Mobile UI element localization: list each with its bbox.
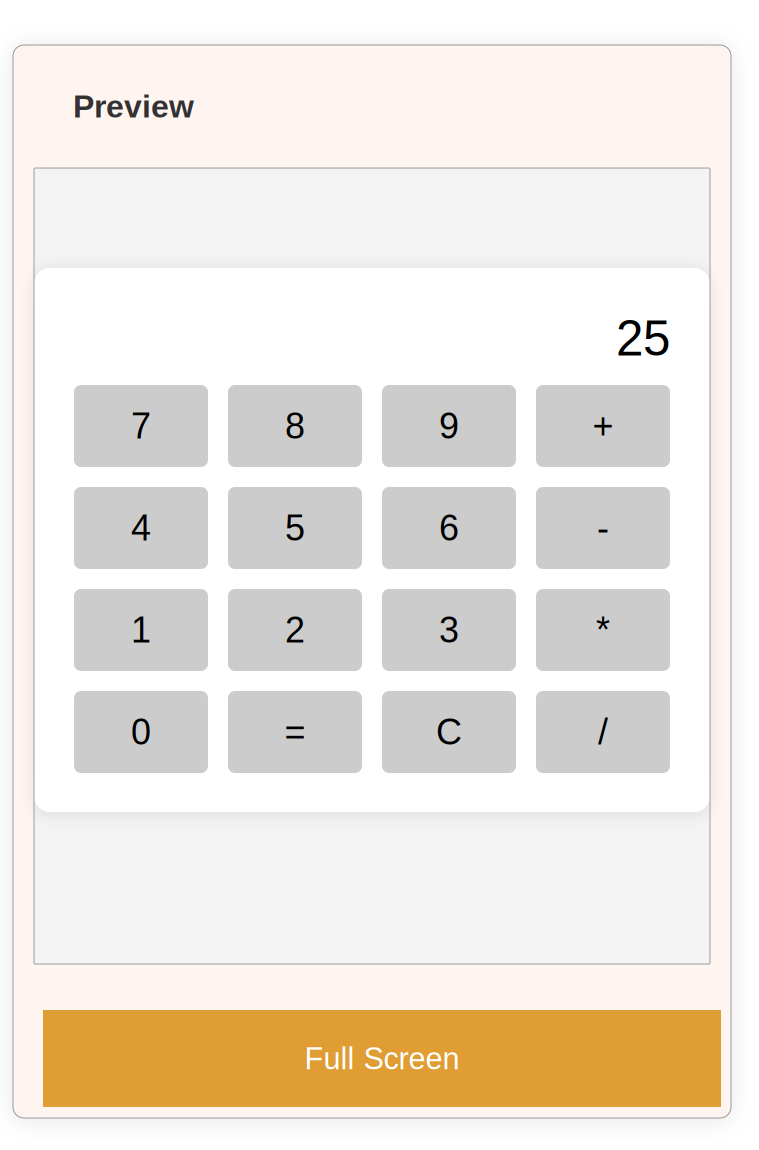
staticText: 9 bbox=[439, 406, 459, 446]
button[interactable]: / bbox=[536, 691, 670, 773]
staticText: 0 bbox=[131, 712, 151, 752]
button[interactable]: 4 bbox=[74, 487, 208, 569]
staticText: 2 bbox=[285, 610, 305, 650]
staticText: * bbox=[596, 610, 610, 650]
staticText: - bbox=[597, 508, 609, 548]
staticText: Full Screen bbox=[304, 1041, 459, 1076]
staticText: + bbox=[592, 406, 613, 446]
button[interactable]: 8 bbox=[228, 385, 362, 467]
staticText: Preview bbox=[73, 89, 194, 124]
staticText: / bbox=[598, 712, 608, 752]
button[interactable]: 6 bbox=[382, 487, 516, 569]
staticText: C bbox=[436, 712, 462, 752]
button[interactable]: 9 bbox=[382, 385, 516, 467]
button[interactable]: * bbox=[536, 589, 670, 671]
button[interactable]: + bbox=[536, 385, 670, 467]
button[interactable]: 5 bbox=[228, 487, 362, 569]
button[interactable]: C bbox=[382, 691, 516, 773]
button[interactable]: 2 bbox=[228, 589, 362, 671]
button[interactable]: = bbox=[228, 691, 362, 773]
staticText: 6 bbox=[439, 508, 459, 548]
button[interactable]: 3 bbox=[382, 589, 516, 671]
staticText: = bbox=[284, 712, 305, 752]
staticText: 4 bbox=[131, 508, 151, 548]
staticText: 1 bbox=[131, 610, 151, 650]
button[interactable]: Full Screen bbox=[43, 1010, 721, 1107]
staticText: 8 bbox=[285, 406, 305, 446]
button[interactable]: 7 bbox=[74, 385, 208, 467]
staticText: 3 bbox=[439, 610, 459, 650]
button[interactable]: - bbox=[536, 487, 670, 569]
button[interactable]: 1 bbox=[74, 589, 208, 671]
staticText: 7 bbox=[131, 406, 151, 446]
button[interactable]: 0 bbox=[74, 691, 208, 773]
staticText: 5 bbox=[285, 508, 305, 548]
staticText: 25 bbox=[616, 311, 670, 366]
